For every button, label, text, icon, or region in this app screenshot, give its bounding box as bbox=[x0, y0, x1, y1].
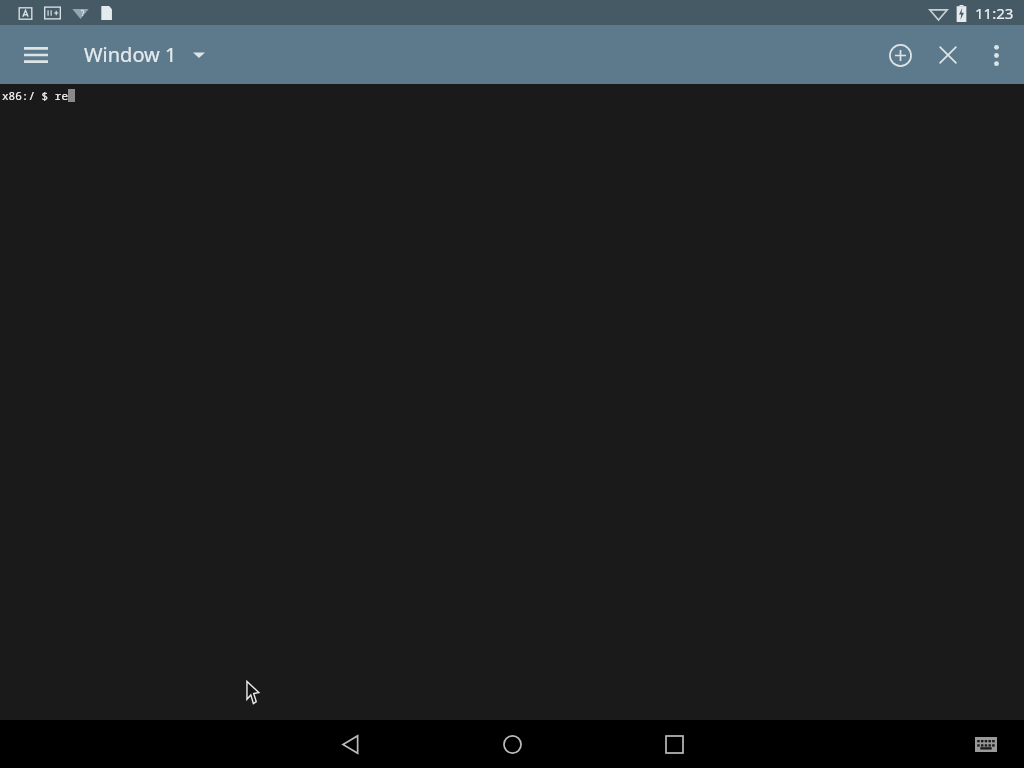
button[interactable]: Back bbox=[318, 720, 382, 768]
button[interactable]: Recent apps bbox=[642, 720, 706, 768]
button[interactable]: Close window bbox=[924, 31, 972, 79]
button[interactable]: Home bbox=[480, 720, 544, 768]
button[interactable]: Show keyboard bbox=[966, 724, 1006, 764]
button[interactable]: More options bbox=[972, 31, 1020, 79]
button[interactable]: Open navigation drawer bbox=[12, 31, 60, 79]
button[interactable]: New window bbox=[876, 31, 924, 79]
button[interactable]: x86:/ $ re bbox=[0, 84, 1024, 720]
staticText: 11:23 bbox=[975, 3, 1014, 23]
staticText: x86:/ $ re bbox=[2, 88, 68, 103]
staticText: Window 1 bbox=[84, 41, 177, 68]
button[interactable]: Window 1 bbox=[76, 35, 213, 74]
